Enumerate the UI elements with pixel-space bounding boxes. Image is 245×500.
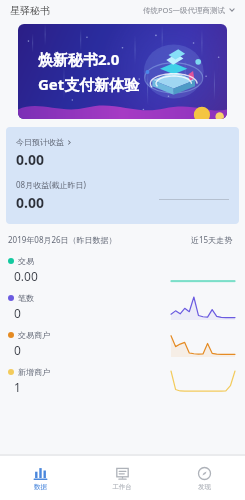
button[interactable]: 交易 bbox=[8, 251, 237, 288]
staticText: 近15天走势 bbox=[191, 234, 233, 245]
staticText: 0.00 bbox=[14, 268, 38, 284]
button[interactable]: 笔数 bbox=[8, 288, 237, 325]
staticText: 交易 bbox=[18, 256, 34, 266]
staticText: Get支付新体验 bbox=[38, 74, 140, 94]
staticText: 工作台 bbox=[112, 483, 132, 491]
staticText: 发现 bbox=[198, 483, 211, 491]
staticText: 焕新秘书2.0 bbox=[38, 49, 120, 69]
staticText: 星驿秘书 bbox=[10, 4, 50, 17]
staticText: 新增商户 bbox=[18, 367, 50, 377]
button[interactable]: 交易商户 bbox=[8, 325, 237, 362]
staticText: 笔数 bbox=[18, 293, 34, 303]
staticText: 0 bbox=[14, 342, 21, 358]
button[interactable]: 焕新秘书2.0 bbox=[18, 24, 227, 119]
button[interactable]: 传统POS一级代理商测试 bbox=[141, 3, 237, 17]
staticText: 08月收益(截止昨日) bbox=[16, 179, 86, 190]
staticText: 0 bbox=[14, 305, 21, 321]
staticText: 传统POS一级代理商测试 bbox=[143, 5, 226, 15]
staticText: 今日预计收益 bbox=[16, 137, 64, 147]
button[interactable]: 数据 bbox=[0, 456, 81, 500]
staticText: 2019年08月26日（昨日数据） bbox=[8, 234, 117, 245]
staticText: 数据 bbox=[34, 483, 47, 491]
staticText: 0.00 bbox=[16, 193, 44, 212]
button[interactable]: 新增商户 bbox=[8, 362, 237, 399]
button[interactable]: 发现 bbox=[163, 456, 245, 500]
button[interactable]: 今日预计收益 bbox=[6, 127, 239, 224]
staticText: 交易商户 bbox=[18, 330, 50, 340]
staticText: 1 bbox=[14, 379, 21, 395]
staticText: 0.00 bbox=[16, 150, 44, 169]
button[interactable]: 工作台 bbox=[81, 456, 163, 500]
